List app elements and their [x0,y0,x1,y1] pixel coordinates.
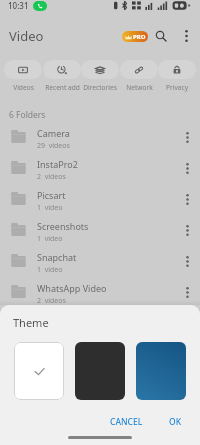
button[interactable]: Snapchat [0,245,200,276]
staticText: Videos [13,83,34,92]
button[interactable]: Folder options [178,190,196,208]
button[interactable]: Light theme, selected [14,342,64,400]
button[interactable]: Privacy [158,60,196,92]
button[interactable]: Picsart [0,183,200,214]
button[interactable]: More options [177,27,195,45]
button[interactable]: Blue theme [136,342,186,400]
staticText: OK [169,416,182,428]
staticText: 2 videos [37,172,66,182]
staticText: WhatsApp Video [37,282,107,294]
staticText: Recent add [45,83,80,92]
staticText: CANCEL [110,416,143,428]
button[interactable]: Folder options [178,221,196,239]
staticText: Picsart [37,189,66,201]
button[interactable]: Network [120,60,158,92]
staticText: Camera [37,127,70,139]
staticText: Network [126,83,153,92]
staticText: 1 video [37,234,63,244]
button[interactable]: Folder options [178,283,196,301]
staticText: 29 videos [37,141,70,151]
button[interactable]: WhatsApp Video [0,276,200,307]
staticText: Screenshots [37,220,89,232]
staticText: PRO [133,33,146,41]
button[interactable]: Camera [0,121,200,152]
button[interactable]: Dark theme [75,342,125,400]
button[interactable]: Upgrade to Pro [122,31,148,42]
staticText: Snapchat [37,251,77,263]
button[interactable]: CANCEL [105,413,148,431]
button[interactable]: Recent add [43,60,81,92]
staticText: 10:31 [8,0,29,11]
staticText: 2 videos [37,296,66,306]
button[interactable]: Directories [81,60,119,92]
button[interactable]: Videos [4,60,42,92]
staticText: 1 video [37,203,63,213]
button[interactable]: Screenshots [0,214,200,245]
button[interactable]: OK [164,413,187,431]
button[interactable]: Folder options [178,252,196,270]
staticText: 6 Folders [9,109,46,121]
button[interactable]: InstaPro2 [0,152,200,183]
staticText: InstaPro2 [37,158,78,170]
staticText: Directories [83,83,117,92]
staticText: 1 video [37,265,63,275]
staticText: Privacy [166,83,188,92]
staticText: Theme [13,315,49,330]
staticText: Video [9,27,44,45]
button[interactable]: Folder options [178,159,196,177]
button[interactable]: Search [151,26,171,46]
button[interactable]: Folder options [178,128,196,146]
